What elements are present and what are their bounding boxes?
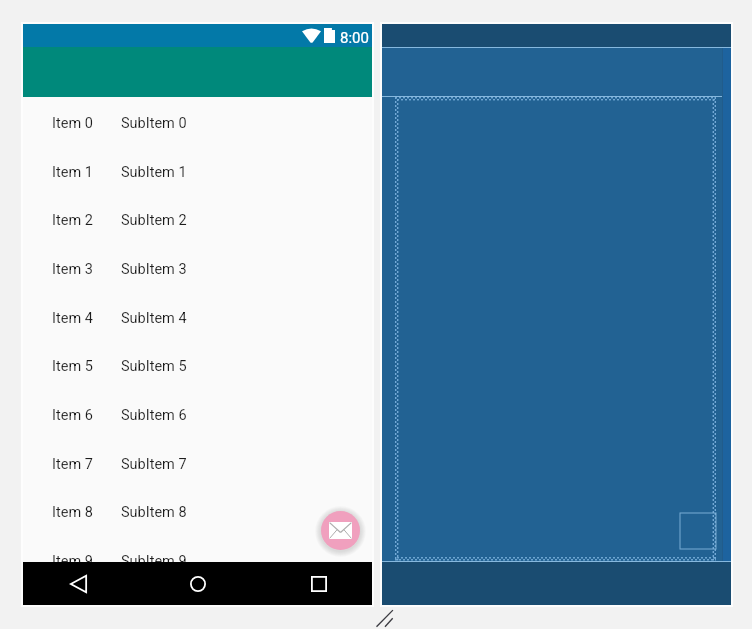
staticText: Item 2 [52,212,93,229]
staticText: SubItem 9 [121,553,187,570]
staticText: SubItem 8 [121,504,187,521]
staticText: SubItem 1 [121,164,187,181]
staticText: Item 0 [52,115,93,132]
button[interactable]: Back [58,564,98,604]
staticText: SubItem 2 [121,212,187,229]
button[interactable]: Item 4 [23,292,372,341]
button[interactable]: Recents [299,564,339,604]
staticText: SubItem 3 [121,261,187,278]
staticText: Item 7 [52,456,93,473]
button[interactable]: Compose email [321,511,360,550]
button[interactable]: Item 6 [23,389,372,438]
staticText: Item 8 [52,504,93,521]
staticText: Item 1 [52,164,93,181]
button[interactable]: Item 1 [23,146,372,195]
staticText: SubItem 6 [121,407,187,424]
staticText: Item 5 [52,358,93,375]
staticText: SubItem 4 [121,310,187,327]
button[interactable]: Item 9 [23,535,372,584]
button[interactable]: Item 2 [23,194,372,243]
staticText: Item 3 [52,261,93,278]
button[interactable]: Item 0 [23,97,372,146]
button[interactable]: Item 7 [23,438,372,487]
button[interactable]: Item 3 [23,243,372,292]
button[interactable]: Item 5 [23,340,372,389]
staticText: 8:00 [340,29,369,47]
staticText: Item 6 [52,407,93,424]
button[interactable]: Home [178,564,218,604]
button[interactable]: Item 8 [23,486,372,535]
staticText: SubItem 7 [121,456,187,473]
staticText: SubItem 5 [121,358,187,375]
staticText: Item 4 [52,310,93,327]
staticText: Item 9 [52,553,93,570]
staticText: SubItem 0 [121,115,187,132]
